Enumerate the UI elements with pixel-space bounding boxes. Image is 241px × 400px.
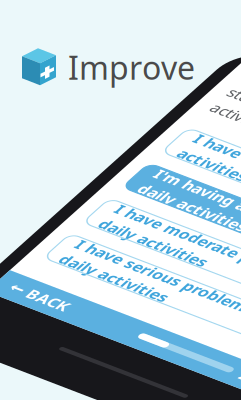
staticText: Improve — [68, 46, 195, 88]
